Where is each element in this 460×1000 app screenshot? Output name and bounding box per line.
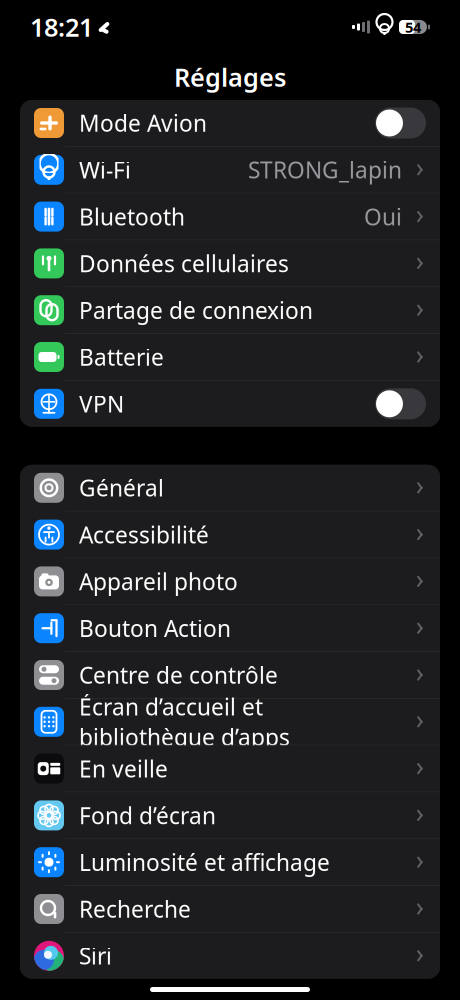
- button[interactable]: Bluetooth: [20, 194, 440, 240]
- staticText: 18:21: [30, 10, 93, 44]
- staticText: Batterie: [79, 342, 164, 372]
- staticText: 54: [405, 17, 421, 37]
- staticText: Wi-Fi: [79, 155, 131, 185]
- staticText: En veille: [79, 753, 168, 784]
- staticText: Écran d’accueil et bibliothèque d’apps: [79, 692, 290, 752]
- staticText: Fond d’écran: [79, 800, 216, 830]
- staticText: Mode Avion: [79, 108, 207, 138]
- button[interactable]: Siri: [20, 933, 440, 979]
- button[interactable]: Luminosité et affichage: [20, 839, 440, 885]
- button[interactable]: Mode Avion: [20, 100, 440, 146]
- staticText: Siri: [79, 941, 112, 971]
- staticText: Bluetooth: [79, 201, 185, 232]
- button[interactable]: Données cellulaires: [20, 240, 440, 286]
- staticText: Luminosité et affichage: [79, 847, 330, 877]
- button[interactable]: Général: [20, 465, 440, 511]
- staticText: Appareil photo: [79, 566, 238, 596]
- staticText: Oui: [364, 201, 402, 232]
- button[interactable]: VPN: [20, 381, 440, 427]
- staticText: Recherche: [79, 894, 191, 924]
- staticText: Centre de contrôle: [79, 660, 278, 690]
- staticText: Partage de connexion: [79, 295, 313, 325]
- staticText: Données cellulaires: [79, 248, 289, 278]
- staticText: VPN: [79, 389, 124, 419]
- staticText: STRONG_lapin: [248, 155, 402, 185]
- button[interactable]: Écran d’accueil et bibliothèque d’apps: [20, 699, 440, 745]
- staticText: Accessibilité: [79, 519, 209, 550]
- button[interactable]: Recherche: [20, 886, 440, 932]
- button[interactable]: Fond d’écran: [20, 792, 440, 838]
- staticText: Général: [79, 473, 164, 503]
- staticText: Bouton Action: [79, 613, 231, 643]
- staticText: Réglages: [174, 60, 286, 94]
- button[interactable]: En veille: [20, 746, 440, 792]
- button[interactable]: Wi-Fi: [20, 147, 440, 193]
- button[interactable]: Appareil photo: [20, 558, 440, 604]
- button[interactable]: Batterie: [20, 334, 440, 380]
- button[interactable]: Bouton Action: [20, 605, 440, 651]
- button[interactable]: Accessibilité: [20, 512, 440, 558]
- button[interactable]: Centre de contrôle: [20, 652, 440, 698]
- button[interactable]: Partage de connexion: [20, 287, 440, 333]
